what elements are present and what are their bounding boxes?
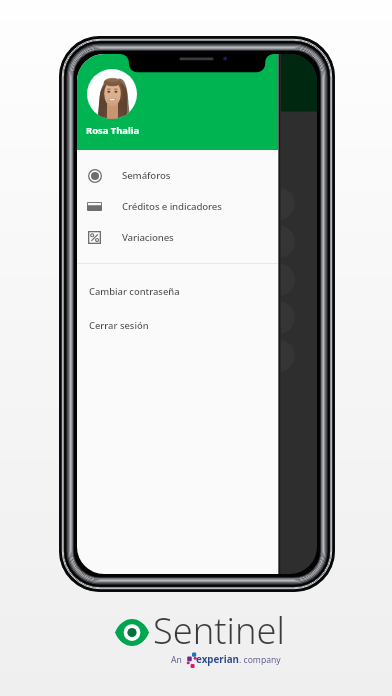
staticText: experian	[196, 653, 239, 666]
staticText: Créditos e indicadores	[122, 200, 222, 213]
button[interactable]: Variaciones	[77, 222, 278, 253]
staticText: . company	[239, 654, 281, 666]
button[interactable]: Cerrar sesión	[77, 308, 278, 342]
staticText: Semáforos	[122, 169, 171, 182]
button[interactable]: Semáforos	[77, 160, 278, 191]
staticText: An	[171, 654, 182, 666]
staticText: Rosa Thalia	[86, 124, 140, 137]
staticText: Cerrar sesión	[89, 319, 149, 332]
other: Sentinel eye logo	[115, 620, 149, 645]
button[interactable]: Cambiar contraseña	[77, 274, 278, 308]
staticText: Variaciones	[122, 231, 174, 244]
staticText: Cambiar contraseña	[89, 285, 180, 298]
staticText: Sentinel	[153, 605, 285, 654]
button[interactable]: Créditos e indicadores	[77, 191, 278, 222]
